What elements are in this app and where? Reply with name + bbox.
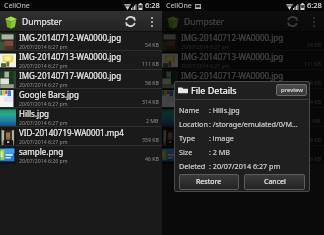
- button[interactable]: Hills.jpg: [162, 108, 324, 126]
- staticText: 2 MB: [146, 117, 159, 124]
- staticText: 20/07/2014 6:27 pm: [181, 43, 230, 50]
- button[interactable]: sample.png: [0, 146, 162, 164]
- staticText: Location: [179, 119, 208, 129]
- staticText: IMG-20140713-WA0000.jpg: [19, 51, 122, 62]
- button[interactable]: IMG-20140713-WA0000.jpg: [0, 51, 162, 69]
- staticText: 46 KB: [145, 155, 159, 162]
- staticText: 20/07/2014 6:27 pm: [181, 81, 230, 88]
- staticText: IMG-20140712-WA0000.jpg: [19, 32, 122, 43]
- staticText: 314 KB: [142, 98, 159, 105]
- button[interactable]: VID-20140719-WA0001.mp4: [162, 127, 324, 145]
- staticText: 6:28: [307, 0, 322, 10]
- staticText: Size: [179, 147, 193, 157]
- button[interactable]: Restore: [179, 174, 239, 190]
- button[interactable]: IMG-20140712-WA0000.jpg: [0, 32, 162, 50]
- staticText: File Details: [191, 84, 237, 96]
- staticText: : image: [209, 133, 234, 143]
- staticText: Hills.jpg: [181, 108, 211, 119]
- button[interactable]: Refresh: [120, 11, 141, 32]
- staticText: 20/07/2014 6:27 pm: [19, 43, 68, 50]
- button[interactable]: VID-20140719-WA0001.mp4: [0, 127, 162, 145]
- staticText: VID-20140719-WA0001.mp4: [181, 127, 286, 138]
- staticText: sample.png: [181, 146, 226, 157]
- button[interactable]: Hills.jpg: [0, 108, 162, 126]
- button[interactable]: IMG-20140717-WA0000.jpg: [162, 70, 324, 88]
- staticText: : 20/07/2014 6:27 pm: [209, 161, 281, 171]
- staticText: 20/07/2014 6:27 pm: [19, 119, 68, 126]
- staticText: 314 KB: [304, 98, 321, 105]
- staticText: 359 KB: [142, 136, 159, 143]
- button[interactable]: More options: [303, 11, 324, 32]
- staticText: Google Bars.jpg: [19, 89, 79, 100]
- staticText: 20/07/2014 6:27 pm: [19, 62, 68, 69]
- button[interactable]: sample.png: [162, 146, 324, 164]
- button[interactable]: Google Bars.jpg: [0, 89, 162, 107]
- staticText: 111 KB: [142, 60, 159, 67]
- staticText: Dumpster: [22, 16, 63, 28]
- button[interactable]: IMG-20140712-WA0000.jpg: [162, 32, 324, 50]
- staticText: IMG-20140713-WA0000.jpg: [181, 51, 284, 62]
- button[interactable]: Refresh: [282, 11, 303, 32]
- staticText: : /storage/emulated/0/M…: [209, 119, 298, 129]
- button[interactable]: IMG-20140713-WA0000.jpg: [162, 51, 324, 69]
- staticText: Dumpster: [184, 16, 225, 28]
- staticText: Restore: [196, 177, 222, 187]
- staticText: IMG-20140712-WA0000.jpg: [181, 32, 284, 43]
- staticText: 20/07/2014 6:27 pm: [19, 81, 68, 88]
- staticText: 20/07/2014 6:27 pm: [19, 100, 68, 107]
- staticText: Name: [179, 105, 200, 115]
- staticText: 359 KB: [304, 136, 321, 143]
- button[interactable]: Cancel: [244, 174, 305, 190]
- staticText: 2 MB: [308, 117, 321, 124]
- staticText: 6:28: [145, 0, 160, 10]
- button[interactable]: preview: [276, 84, 307, 96]
- staticText: 20/07/2014 6:27 pm: [19, 138, 68, 145]
- staticText: CellOne: [4, 1, 30, 11]
- staticText: Type: [179, 133, 195, 143]
- button[interactable]: More options: [141, 11, 162, 32]
- staticText: 54 KB: [307, 41, 321, 48]
- staticText: Deleted: [179, 161, 206, 171]
- staticText: 20/07/2014 6:26 pm: [19, 157, 68, 164]
- staticText: CellOne: [166, 1, 192, 11]
- staticText: : Hills.jpg: [209, 105, 240, 115]
- staticText: 54 KB: [145, 41, 159, 48]
- staticText: 20/07/2014 6:27 pm: [181, 119, 230, 126]
- staticText: 46 KB: [307, 155, 321, 162]
- staticText: 20/07/2014 6:27 pm: [181, 62, 230, 69]
- button[interactable]: Google Bars.jpg: [162, 89, 324, 107]
- staticText: Cancel: [264, 177, 286, 187]
- staticText: 111 KB: [304, 60, 321, 67]
- staticText: Google Bars.jpg: [181, 89, 241, 100]
- staticText: 58 KB: [145, 79, 159, 86]
- staticText: preview: [281, 86, 303, 94]
- button[interactable]: IMG-20140717-WA0000.jpg: [0, 70, 162, 88]
- staticText: IMG-20140717-WA0000.jpg: [181, 70, 284, 81]
- staticText: 20/07/2014 6:27 pm: [181, 138, 230, 145]
- staticText: 58 KB: [307, 79, 321, 86]
- staticText: IMG-20140717-WA0000.jpg: [19, 70, 122, 81]
- staticText: Hills.jpg: [19, 108, 49, 119]
- staticText: sample.png: [19, 146, 64, 157]
- staticText: : 2 MB: [209, 147, 230, 157]
- staticText: VID-20140719-WA0001.mp4: [19, 127, 124, 138]
